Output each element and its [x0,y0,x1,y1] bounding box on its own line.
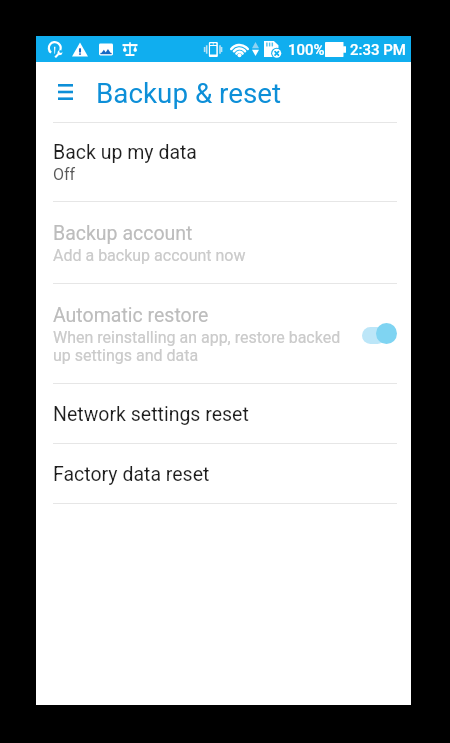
button[interactable]: Network settings reset [36,383,411,443]
staticText: Back up my data [53,141,197,164]
staticText: Factory data reset [53,463,210,486]
staticText: Network settings reset [53,403,249,426]
staticText: Automatic restore [53,304,209,327]
staticText: 100% [288,41,325,59]
staticText: Off [53,165,76,184]
staticText: Add a backup account now [53,246,246,265]
button[interactable]: Factory data reset [36,443,411,503]
staticText: When reinstalling an app, restore backed… [53,328,354,365]
button[interactable]: Back up my data [36,122,411,201]
button[interactable]: Automatic restore [36,283,411,383]
staticText: Backup & reset [96,77,282,110]
staticText: 2:33 PM [350,41,406,59]
button[interactable]: Navigation menu [46,73,84,111]
button[interactable]: Backup account [36,201,411,283]
button[interactable]: Automatic restore toggle [362,323,397,344]
staticText: Backup account [53,222,193,245]
